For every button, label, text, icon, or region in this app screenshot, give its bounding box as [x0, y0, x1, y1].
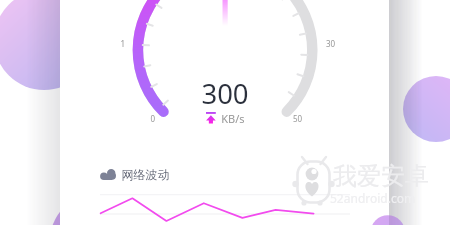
button[interactable]	[0, 0, 450, 225]
